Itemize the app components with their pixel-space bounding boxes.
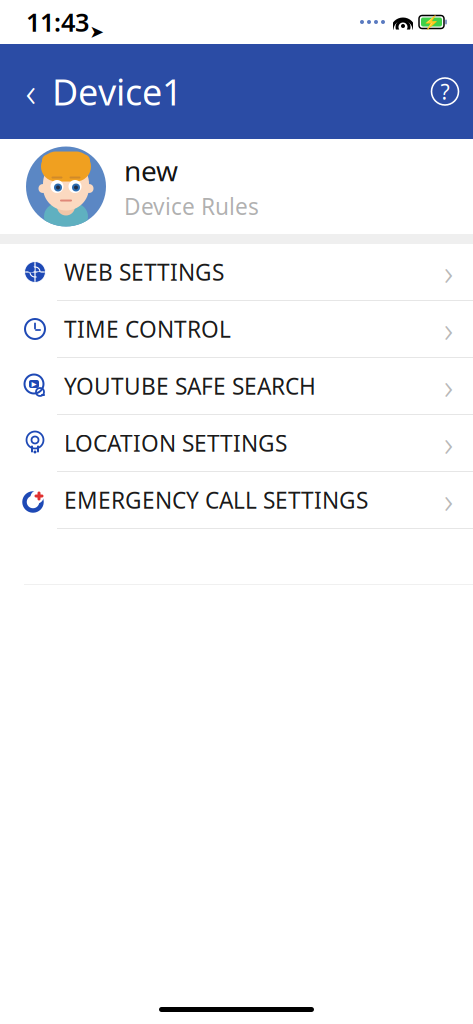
button[interactable]: WEB SETTINGS bbox=[0, 244, 473, 301]
staticText: 11:43 bbox=[26, 5, 89, 39]
staticText: EMERGENCY CALL SETTINGS bbox=[64, 485, 368, 515]
staticText: TIME CONTROL bbox=[64, 314, 231, 344]
staticText: ‹ bbox=[25, 65, 36, 118]
staticText: WEB SETTINGS bbox=[64, 257, 224, 287]
staticText: Device Rules bbox=[124, 191, 259, 221]
staticText: ⚡ bbox=[423, 14, 440, 30]
button[interactable]: Back bbox=[14, 69, 48, 113]
button[interactable]: TIME CONTROL bbox=[0, 301, 473, 358]
staticText: Device1 bbox=[52, 68, 183, 115]
staticText: LOCATION SETTINGS bbox=[64, 428, 287, 458]
button[interactable]: LOCATION SETTINGS bbox=[0, 415, 473, 472]
staticText: › bbox=[444, 477, 453, 523]
staticText: ? bbox=[440, 77, 449, 106]
button[interactable]: Help bbox=[423, 69, 467, 113]
staticText: ➤ bbox=[89, 2, 104, 42]
staticText: YOUTUBE SAFE SEARCH bbox=[64, 371, 316, 401]
button[interactable]: EMERGENCY CALL SETTINGS bbox=[0, 472, 473, 529]
staticText: new bbox=[124, 152, 178, 189]
staticText: › bbox=[444, 249, 453, 295]
staticText: ▶ bbox=[31, 380, 36, 388]
staticText: › bbox=[444, 420, 453, 466]
button[interactable]: ▶ bbox=[0, 358, 473, 415]
staticText: › bbox=[444, 306, 453, 352]
staticText: › bbox=[444, 363, 453, 409]
